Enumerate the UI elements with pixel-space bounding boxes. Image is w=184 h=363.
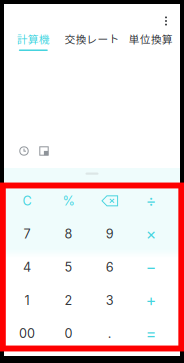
button[interactable]: % [48,184,89,217]
staticText: × [146,224,157,244]
staticText: + [146,291,157,310]
button[interactable]: More options [154,9,178,33]
staticText: 計算機 [17,31,50,46]
button[interactable]: = [130,317,172,350]
button[interactable]: 5 [48,251,89,284]
button[interactable]: 3 [89,284,130,317]
staticText: 00 [19,326,35,341]
button[interactable]: 6 [89,251,130,284]
button[interactable]: 0 [48,317,89,350]
button[interactable]: Saved [34,141,54,161]
staticText: 9 [106,226,114,242]
staticText: − [146,257,157,277]
button[interactable]: 計算機 [4,29,63,53]
staticText: 8 [64,226,72,242]
staticText: 交換レート [64,31,119,46]
button[interactable]: ÷ [130,184,172,217]
button[interactable]: × [130,217,172,250]
staticText: ÷ [146,191,157,210]
button[interactable]: 4 [6,251,48,284]
button[interactable]: C [6,184,48,217]
button[interactable]: 単位換算 [121,29,180,53]
button[interactable]: 7 [6,217,48,250]
staticText: 7 [23,226,30,242]
staticText: . [108,326,112,341]
staticText: = [146,324,157,343]
button[interactable]: 2 [48,284,89,317]
staticText: 6 [106,259,114,275]
button[interactable]: + [130,284,172,317]
button[interactable]: . [89,317,130,350]
staticText: 1 [24,293,29,308]
button[interactable]: 00 [6,317,48,350]
staticText: 4 [23,259,31,275]
button[interactable]: 1 [6,284,48,317]
staticText: 単位換算 [129,31,173,46]
staticText: C [22,193,31,208]
staticText: 2 [64,293,72,308]
staticText: 0 [64,326,72,341]
button[interactable]: 交換レート [63,29,121,53]
staticText: % [62,193,74,208]
staticText: 3 [106,293,114,308]
button[interactable]: 9 [89,217,130,250]
staticText: 5 [64,259,72,275]
button[interactable]: 8 [48,217,89,250]
button[interactable]: Backspace [89,184,130,217]
button[interactable]: − [130,251,172,284]
button[interactable]: History [14,141,34,161]
